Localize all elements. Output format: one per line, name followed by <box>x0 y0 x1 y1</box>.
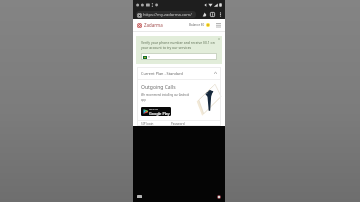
staticText: https://my.zadarma.com/ <box>143 12 192 18</box>
staticText: Outgoing Calls <box>141 84 176 91</box>
button[interactable]: Current Plan - Standard <box>141 67 217 79</box>
staticText: Verify your phone number and receive $0.… <box>141 40 215 50</box>
staticText: GET IT ON <box>149 108 159 111</box>
staticText: Google Play <box>149 111 170 116</box>
staticText: SIP login <box>141 122 154 126</box>
button[interactable]: https://my.zadarma.com/ <box>136 11 196 18</box>
button[interactable]: Notification <box>216 194 221 199</box>
staticText: Zadarma <box>144 22 163 28</box>
button[interactable]: More options <box>217 11 223 17</box>
button[interactable]: Home <box>201 11 207 17</box>
button[interactable]: GET IT ON <box>141 107 171 116</box>
staticText: Current Plan - Standard <box>141 71 183 76</box>
staticText: We recommend installing our Android app <box>141 93 191 102</box>
button[interactable]: Tabs <box>209 11 215 17</box>
button[interactable]: Menu <box>215 22 221 28</box>
button[interactable]: Keyboard <box>137 195 142 198</box>
staticText: Password <box>171 122 185 126</box>
staticText: Balance $0 <box>189 23 205 27</box>
